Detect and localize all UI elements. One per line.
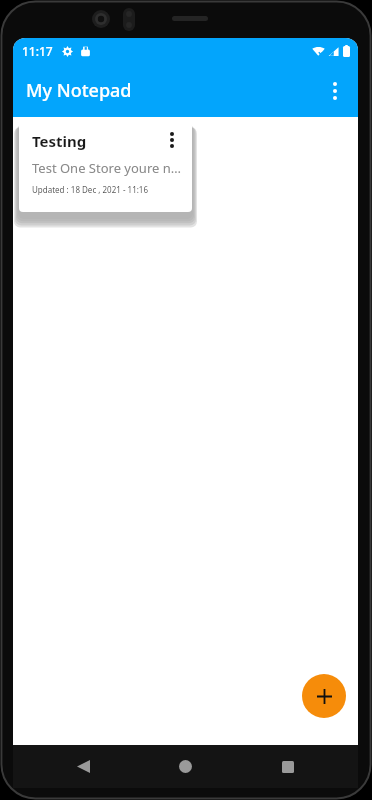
staticText: My Notepad [26, 78, 132, 103]
button[interactable]: Add note [302, 674, 346, 718]
staticText: Updated : 18 Dec , 2021 - 11:16 [32, 184, 149, 195]
button[interactable]: Testing [19, 122, 192, 212]
staticText: 11:17 [22, 43, 53, 59]
staticText: Testing [32, 131, 160, 151]
button[interactable]: Note options [160, 128, 184, 152]
button[interactable]: More options [316, 72, 354, 110]
button[interactable]: Recent apps [264, 745, 312, 788]
button[interactable]: Home [161, 745, 209, 788]
button[interactable]: Back [59, 745, 107, 788]
staticText: Test One Store youre n… [32, 159, 182, 177]
